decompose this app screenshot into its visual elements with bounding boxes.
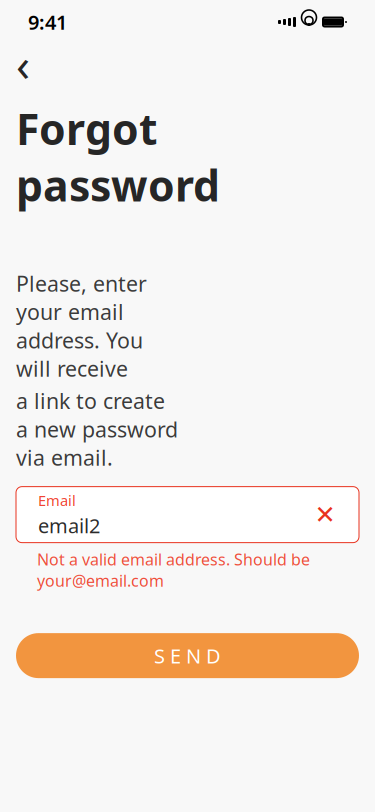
staticText: Forgot password — [16, 100, 220, 213]
staticText: Not a valid email address. Should be you… — [37, 549, 310, 591]
staticText: Email — [38, 491, 76, 510]
button[interactable]: S E N D — [16, 633, 359, 678]
staticText: Please, enter your email address. You wi… — [16, 269, 147, 383]
staticText: a link to create a new password via emai… — [16, 387, 178, 472]
staticText: email2 — [38, 512, 100, 539]
button[interactable]: Back — [6, 47, 40, 81]
staticText: 9:41 — [28, 9, 67, 35]
staticText: ✕ — [314, 500, 335, 529]
staticText: ‹ — [16, 34, 30, 94]
button[interactable]: Email — [16, 487, 359, 543]
staticText: S E N D — [154, 642, 221, 669]
